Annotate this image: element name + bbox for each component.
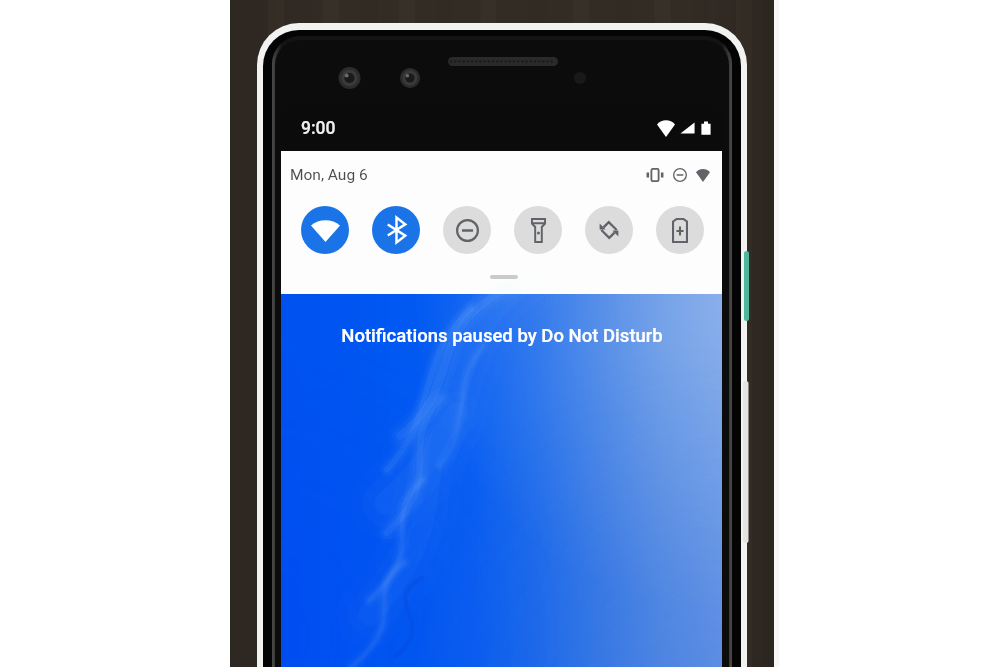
button[interactable]: Flashlight (514, 206, 562, 254)
button[interactable]: Battery Saver (656, 206, 704, 254)
staticText: Mon, Aug 6 (290, 166, 368, 184)
button[interactable]: Auto rotate (585, 206, 633, 254)
button[interactable]: Bluetooth (372, 206, 420, 254)
button[interactable]: Do Not Disturb (443, 206, 491, 254)
staticText: Notifications paused by Do Not Disturb (341, 325, 663, 347)
staticText: 9:00 (301, 118, 336, 139)
button[interactable]: Wi-Fi (301, 206, 349, 254)
